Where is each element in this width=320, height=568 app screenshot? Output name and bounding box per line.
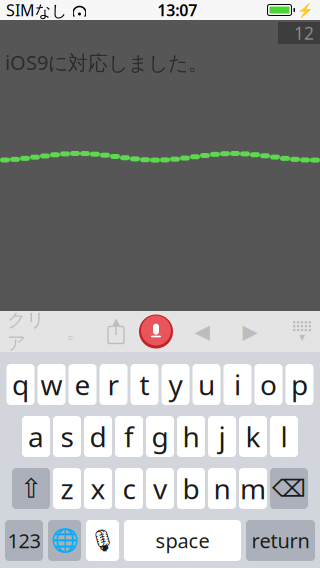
staticText: ▲ (112, 315, 120, 327)
staticText: c (122, 470, 135, 507)
button[interactable]: s (53, 416, 81, 457)
staticText: 。 (66, 320, 85, 343)
button[interactable]: Next (226, 311, 274, 352)
button[interactable]: p (285, 364, 313, 405)
staticText: b (182, 470, 199, 507)
staticText: r (107, 366, 119, 403)
staticText: h (182, 418, 199, 455)
button[interactable]: g (146, 416, 174, 457)
button[interactable]: x (84, 468, 112, 509)
button[interactable]: Dictation (86, 520, 119, 561)
staticText: w (40, 366, 62, 403)
staticText: s (60, 418, 73, 455)
staticText: u (198, 366, 215, 403)
staticText: o (260, 366, 277, 403)
staticText: ⇧ (20, 473, 42, 504)
staticText: 13:07 (157, 0, 197, 21)
staticText: 123 (7, 527, 40, 554)
staticText: ◀ (194, 320, 209, 343)
staticText: g (151, 418, 168, 455)
staticText: t (139, 366, 149, 403)
button[interactable]: k (239, 416, 267, 457)
staticText: iOS9に対応しました。 (5, 49, 208, 76)
staticText: k (245, 418, 260, 455)
button[interactable]: クリア (0, 311, 54, 352)
button[interactable]: m (239, 468, 267, 509)
staticText: i (234, 366, 241, 403)
staticText: ⚡ (297, 2, 314, 18)
staticText: z (60, 470, 73, 507)
staticText: q (12, 366, 29, 403)
button[interactable]: c (115, 468, 143, 509)
button[interactable]: j (208, 416, 236, 457)
staticText: SIMなし (6, 0, 67, 21)
button[interactable]: q (6, 364, 34, 405)
button[interactable]: Delete (270, 468, 308, 509)
staticText: ▼ (299, 333, 305, 342)
button[interactable]: o (254, 364, 282, 405)
staticText: x (90, 470, 105, 507)
staticText: m (240, 470, 266, 507)
button[interactable]: y (161, 364, 189, 405)
staticText: a (28, 418, 44, 455)
button[interactable]: v (146, 468, 174, 509)
staticText: l (280, 418, 287, 455)
staticText: d (89, 418, 106, 455)
staticText: space (155, 527, 209, 554)
button[interactable]: t (130, 364, 158, 405)
button[interactable]: f (115, 416, 143, 457)
button[interactable]: Shift (12, 468, 50, 509)
button[interactable]: n (208, 468, 236, 509)
button[interactable]: return (246, 520, 315, 561)
staticText: f (124, 418, 134, 455)
staticText: j (218, 418, 225, 455)
staticText: v (153, 470, 167, 507)
staticText: n (213, 470, 230, 507)
button[interactable]: w (37, 364, 65, 405)
button[interactable]: Next Keyboard (48, 520, 81, 561)
staticText: p (291, 366, 308, 403)
button[interactable]: h (177, 416, 205, 457)
staticText: クリア (7, 309, 45, 354)
staticText: 12 (294, 21, 314, 44)
button[interactable]: r (99, 364, 127, 405)
staticText: 🌐 (50, 528, 78, 553)
button[interactable]: space (124, 520, 241, 561)
button[interactable]: d (84, 416, 112, 457)
button[interactable]: i (223, 364, 251, 405)
staticText: e (74, 366, 90, 403)
button[interactable]: Record (134, 311, 178, 352)
button[interactable]: l (270, 416, 298, 457)
button[interactable]: u (192, 364, 220, 405)
staticText: ▶ (242, 320, 257, 343)
button[interactable]: b (177, 468, 205, 509)
staticText: y (168, 366, 182, 403)
button[interactable]: Hide Keyboard (282, 311, 320, 352)
button[interactable]: z (53, 468, 81, 509)
button[interactable]: 123 (5, 520, 43, 561)
button[interactable]: a (22, 416, 50, 457)
staticText: 🎙 (89, 528, 116, 553)
button[interactable]: Previous (178, 311, 226, 352)
staticText: ⌫ (272, 475, 306, 502)
button[interactable]: e (68, 364, 96, 405)
button[interactable]: Share (98, 311, 134, 352)
staticText: return (251, 527, 309, 554)
